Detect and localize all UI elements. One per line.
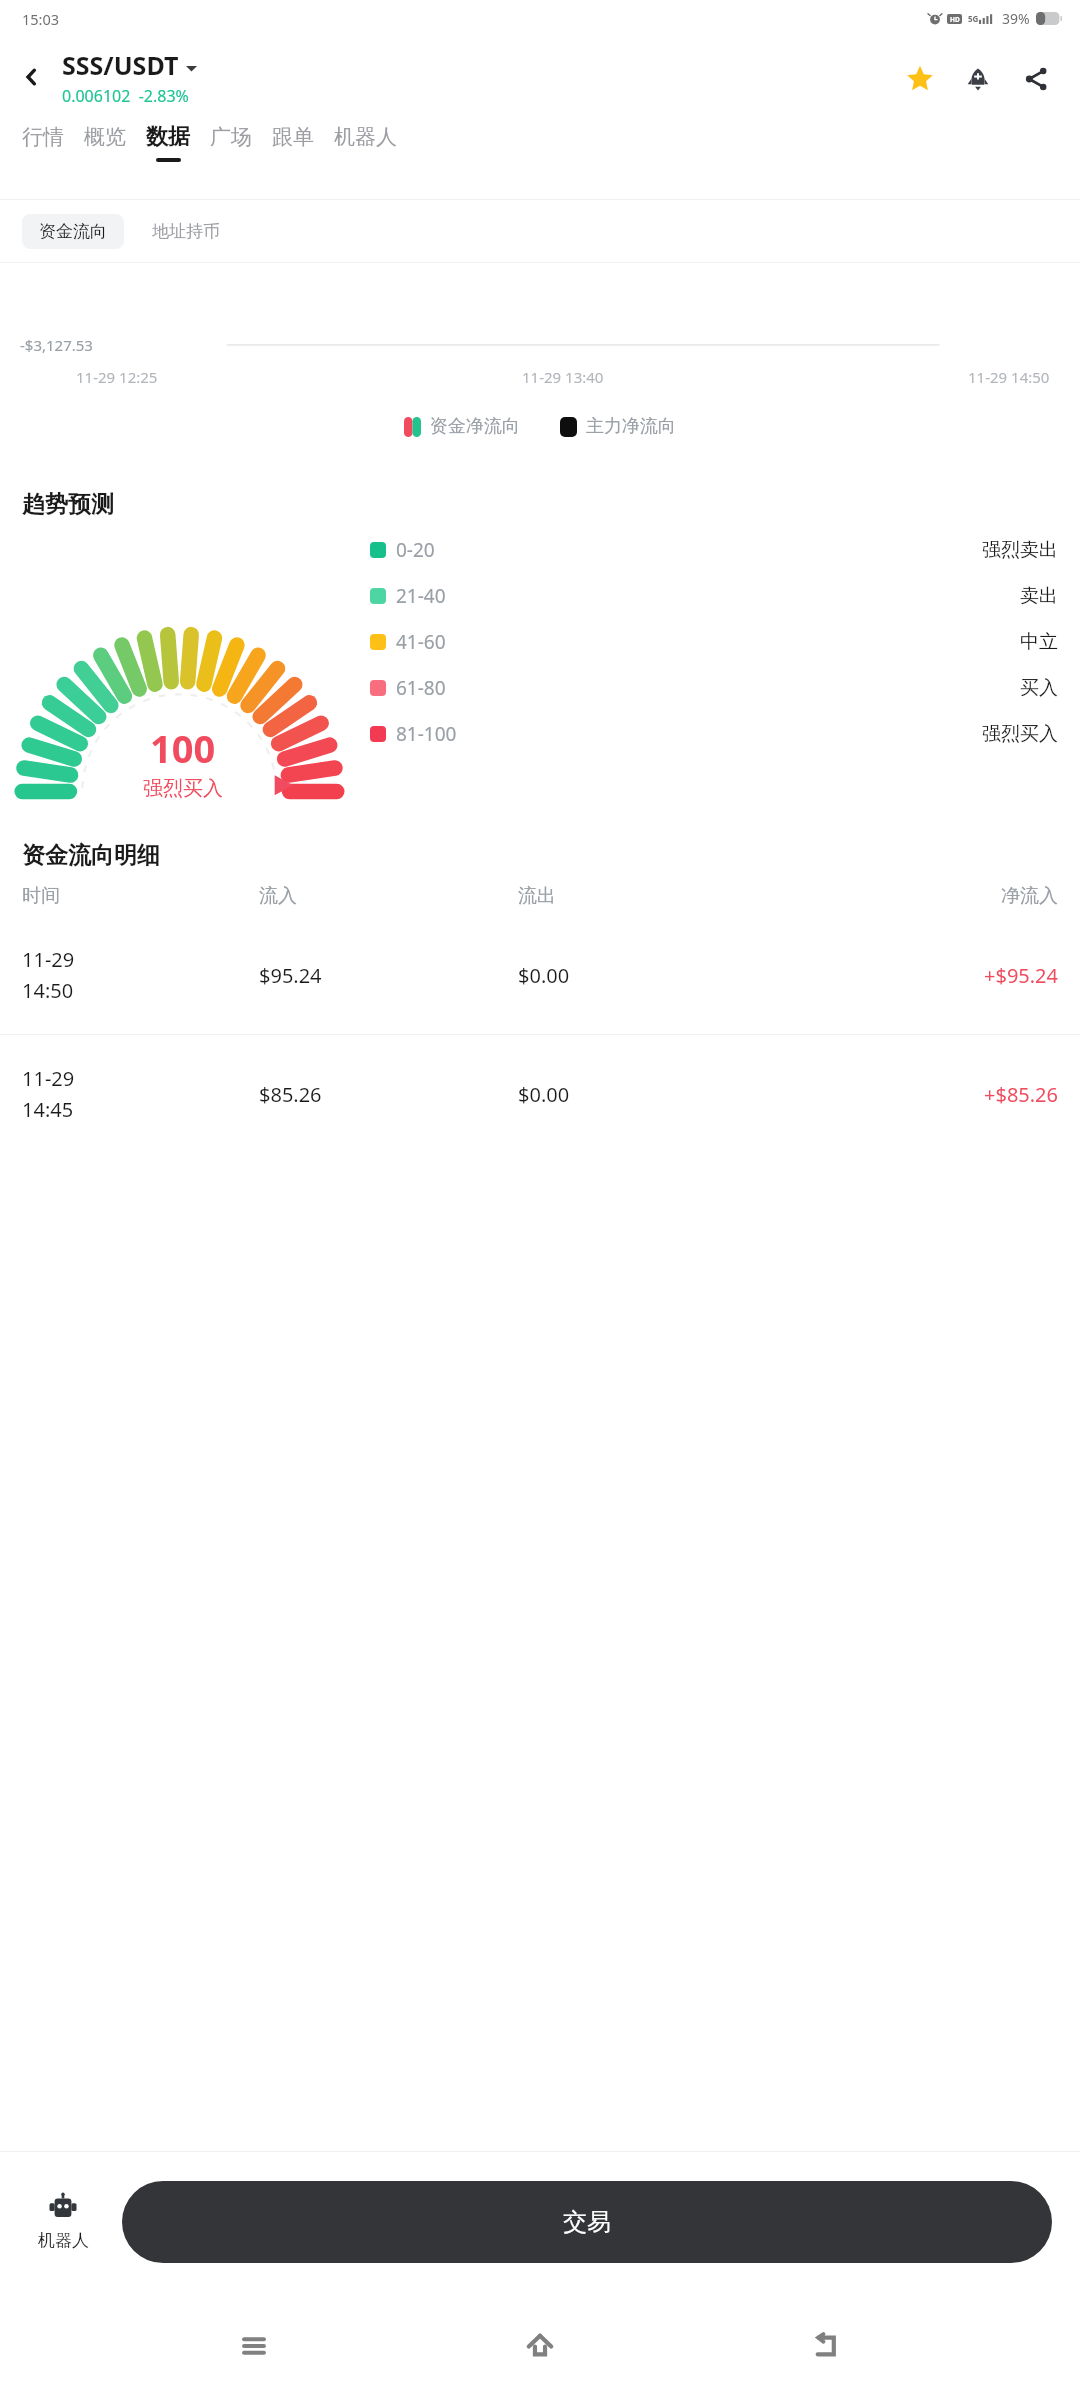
staticText: 41-60 (396, 629, 446, 655)
staticText: -$3,127.53 (20, 335, 93, 355)
staticText: 机器人 (38, 2230, 89, 2251)
staticText: 行情 (22, 124, 64, 150)
button[interactable]: 概览 (84, 118, 126, 167)
staticText: 0.006102 -2.83% (62, 85, 189, 107)
staticText: 11-29 (22, 1065, 75, 1092)
button[interactable]: 11-29 (0, 1035, 1080, 1153)
staticText: 11-29 13:40 (522, 367, 604, 387)
staticText: 资金流向明细 (22, 841, 160, 870)
staticText: 资金流向 (39, 221, 107, 242)
button[interactable]: 资金流向 (22, 214, 124, 249)
staticText: 卖出 (1020, 584, 1058, 608)
button[interactable]: Favorite (898, 57, 942, 101)
staticText: 中立 (1020, 630, 1058, 654)
staticText: 数据 (146, 123, 190, 151)
button[interactable]: Alerts (956, 57, 1000, 101)
button[interactable]: 交易 (122, 2181, 1052, 2263)
staticText: +$85.26 (833, 1081, 1058, 1108)
staticText: 时间 (22, 884, 259, 908)
staticText: 强烈买入 (143, 776, 223, 801)
staticText: +$95.24 (833, 962, 1058, 989)
staticText: 强烈买入 (982, 722, 1058, 746)
button[interactable]: 机器人 (24, 2193, 102, 2251)
staticText: 地址持币 (152, 221, 220, 242)
staticText: 14:45 (22, 1096, 74, 1123)
staticText: 100 (150, 722, 216, 774)
staticText: 14:50 (22, 977, 74, 1004)
staticText: 流入 (259, 884, 518, 908)
button[interactable]: 机器人 (334, 118, 397, 167)
staticText: $0.00 (518, 962, 833, 989)
staticText: 5G (968, 13, 979, 24)
staticText: $85.26 (259, 1081, 518, 1108)
button[interactable]: Share (1014, 57, 1058, 101)
staticText: 趋势预测 (22, 490, 114, 519)
staticText: 强烈卖出 (982, 538, 1058, 562)
staticText: 主力净流向 (586, 415, 676, 438)
staticText: $95.24 (259, 962, 518, 989)
button[interactable]: 广场 (210, 118, 252, 167)
staticText: 11-29 12:25 (76, 367, 158, 387)
button[interactable]: 地址持币 (138, 214, 234, 249)
staticText: 净流入 (833, 884, 1058, 908)
button[interactable]: Home (508, 2314, 572, 2378)
staticText: SSS/USDT (62, 48, 179, 82)
staticText: 机器人 (334, 124, 397, 150)
button[interactable]: Back (794, 2314, 858, 2378)
staticText: 11-29 14:50 (968, 367, 1050, 387)
staticText: 11-29 (22, 946, 75, 973)
button[interactable]: 数据 (146, 117, 190, 168)
staticText: 61-80 (396, 675, 446, 701)
staticText: 0-20 (396, 537, 435, 563)
staticText: 跟单 (272, 124, 314, 150)
button[interactable]: Back (8, 53, 56, 101)
staticText: 广场 (210, 124, 252, 150)
button[interactable]: 行情 (22, 118, 64, 167)
button[interactable]: 跟单 (272, 118, 314, 167)
staticText: 流出 (518, 884, 833, 908)
button[interactable]: 11-29 (0, 916, 1080, 1034)
staticText: 81-100 (396, 721, 457, 747)
button[interactable]: Recents (222, 2314, 286, 2378)
staticText: 买入 (1020, 676, 1058, 700)
staticText: $0.00 (518, 1081, 833, 1108)
staticText: 21-40 (396, 583, 446, 609)
staticText: 15:03 (22, 9, 60, 29)
staticText: 资金净流向 (430, 415, 520, 438)
staticText: 交易 (563, 2207, 611, 2237)
staticText: 概览 (84, 124, 126, 150)
staticText: 39% (1002, 9, 1030, 28)
staticText: HD (950, 15, 960, 24)
